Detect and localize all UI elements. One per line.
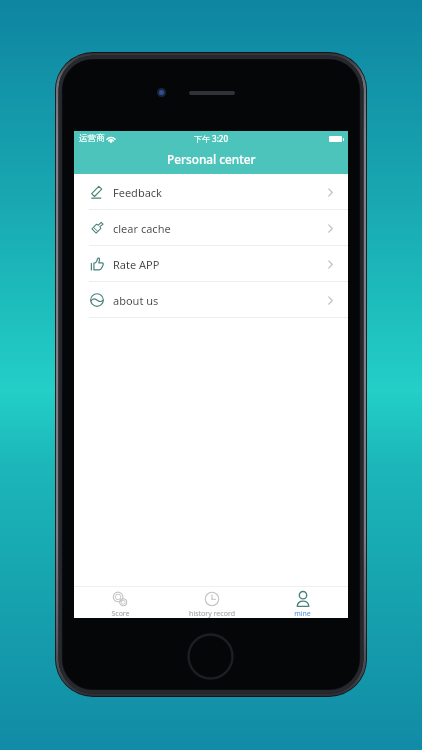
button[interactable]: Score: [74, 587, 166, 618]
staticText: mine: [294, 609, 311, 618]
staticText: Feedback: [113, 185, 162, 200]
staticText: 下午 3:20: [194, 133, 228, 144]
button[interactable]: history record: [166, 587, 257, 618]
button[interactable]: Rate APP: [74, 246, 348, 282]
staticText: clear cache: [113, 221, 171, 236]
button[interactable]: Feedback: [74, 174, 348, 210]
button[interactable]: mine: [257, 587, 348, 618]
staticText: about us: [113, 293, 159, 308]
staticText: Personal center: [167, 151, 256, 167]
staticText: Rate APP: [113, 257, 160, 272]
staticText: 运营商: [79, 133, 105, 144]
button[interactable]: clear cache: [74, 210, 348, 246]
staticText: Score: [111, 609, 130, 618]
staticText: history record: [189, 609, 235, 618]
button[interactable]: about us: [74, 282, 348, 318]
